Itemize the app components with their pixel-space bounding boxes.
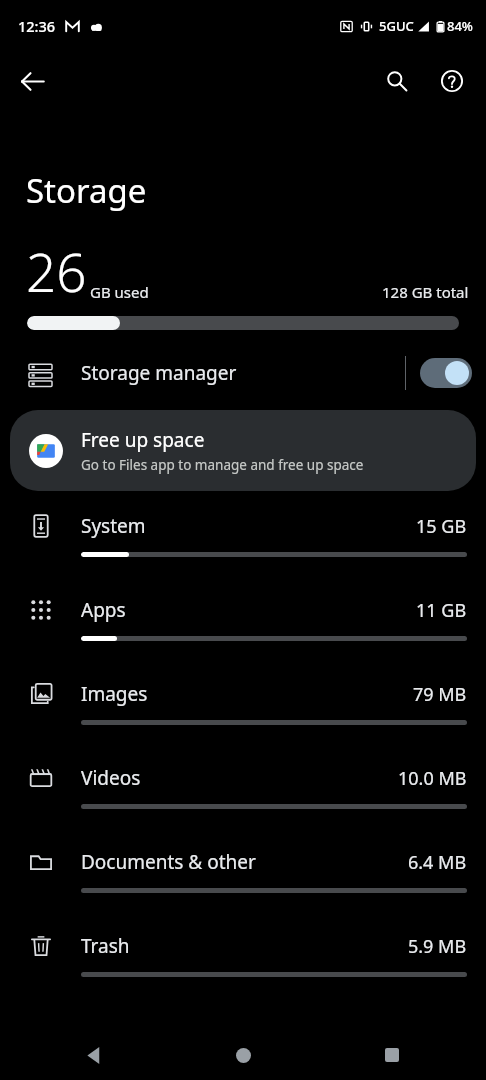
staticText: Free up space (81, 427, 205, 453)
staticText: 10.0 MB (398, 766, 467, 791)
staticText: 11 GB (416, 598, 467, 623)
staticText: Apps (81, 597, 416, 623)
button[interactable]: Videos (0, 752, 486, 836)
button[interactable]: Free up space (10, 410, 476, 491)
staticText: Go to Files app to manage and free up sp… (81, 456, 364, 474)
button[interactable]: Search (373, 57, 421, 105)
button[interactable]: Home (221, 1033, 265, 1077)
button[interactable]: Trash (0, 920, 486, 1004)
staticText: Storage manager (81, 360, 405, 386)
button[interactable]: Apps (0, 584, 486, 668)
staticText: 5.9 MB (408, 934, 467, 959)
button[interactable]: Back (8, 57, 56, 105)
button[interactable]: Documents & other (0, 836, 486, 920)
button[interactable]: Storage manager (0, 344, 486, 402)
button[interactable]: Back (72, 1033, 116, 1077)
staticText: Trash (81, 933, 408, 959)
staticText: Documents & other (81, 849, 408, 875)
button[interactable]: System (0, 500, 486, 584)
button[interactable]: Storage manager toggle (420, 358, 472, 388)
staticText: System (81, 513, 416, 539)
staticText: UC (396, 17, 414, 35)
staticText: 15 GB (416, 514, 467, 539)
staticText: 12:36 (18, 16, 56, 36)
button[interactable]: Recents (370, 1033, 414, 1077)
staticText: 84% (447, 17, 473, 35)
staticText: Videos (81, 765, 398, 791)
staticText: 5G (379, 17, 396, 35)
staticText: 6.4 MB (408, 850, 467, 875)
staticText: 26 (26, 235, 87, 307)
staticText: 79 MB (413, 682, 467, 707)
button[interactable]: Help (428, 57, 476, 105)
staticText: Images (81, 681, 413, 707)
staticText: GB used (90, 282, 149, 302)
staticText: 128 GB total (382, 282, 469, 302)
button[interactable]: Images (0, 668, 486, 752)
staticText: Storage (26, 168, 147, 213)
